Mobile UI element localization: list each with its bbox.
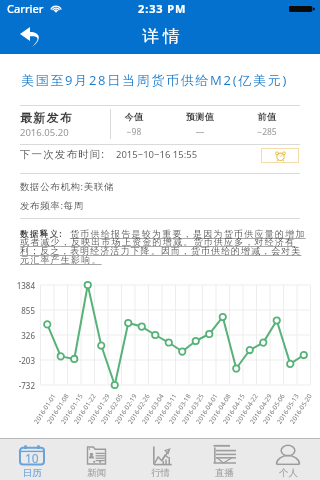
staticText: 元汇率产生影响。: [20, 254, 102, 265]
staticText: 2016-04-15: [221, 392, 247, 425]
staticText: 日历: [23, 467, 42, 479]
staticText: 今值: [94, 111, 174, 122]
staticText: 前值: [227, 111, 307, 122]
staticText: 数据释义:: [20, 228, 63, 240]
staticText: 2:33 PM: [138, 1, 187, 16]
staticText: 2016-03-11: [153, 392, 179, 425]
staticText: 2016.05.20: [20, 126, 69, 139]
staticText: 详情: [140, 26, 182, 47]
staticText: 1384: [0, 280, 35, 291]
staticText: -203: [0, 355, 35, 366]
staticText: 2016-04-29: [248, 392, 274, 425]
staticText: 2016-01-29: [86, 392, 112, 425]
staticText: −98: [94, 126, 174, 138]
staticText: 美国至9月28日当周货币供给M2(亿美元): [21, 71, 289, 89]
staticText: 2016-05-20: [288, 392, 314, 425]
staticText: 2016-05-06: [261, 392, 287, 425]
staticText: 2016-02-26: [126, 392, 152, 425]
staticText: 行情: [151, 467, 170, 479]
staticText: 直播: [215, 467, 234, 479]
staticText: -732: [0, 380, 35, 391]
staticText: 预测值: [160, 111, 240, 122]
staticText: 2016-02-19: [113, 392, 139, 425]
staticText: 2016-01-15: [59, 392, 85, 425]
staticText: 利；反之，表明经济活力下降。因而，货币供给的增减，会对美: [20, 245, 302, 256]
staticText: —: [160, 126, 240, 138]
button[interactable]: 新闻: [64, 439, 128, 480]
staticText: 855: [0, 305, 35, 316]
staticText: 2016-01-22: [72, 392, 98, 425]
staticText: 2016-05-13: [275, 392, 301, 425]
staticText: 10: [25, 450, 39, 466]
staticText: 2016-03-25: [180, 392, 206, 425]
button[interactable]: 直播: [192, 439, 256, 480]
staticText: 数据公布机构:美联储: [20, 180, 115, 193]
staticText: 326: [0, 330, 35, 341]
staticText: −285: [227, 126, 307, 138]
button[interactable]: Back: [17, 24, 45, 50]
staticText: 发布频率:每周: [20, 199, 84, 212]
button[interactable]: 个人: [256, 439, 320, 480]
staticText: 2016-04-01: [194, 392, 220, 425]
button[interactable]: 行情: [128, 439, 192, 480]
staticText: 2016-03-18: [167, 392, 193, 425]
staticText: 2016-04-08: [207, 392, 233, 425]
staticText: Carrier: [7, 1, 44, 16]
staticText: 2016-01-01: [32, 392, 58, 425]
staticText: 2016-01-08: [45, 392, 71, 425]
staticText: 货币供给报告是较为重要，是因为货币供应量的增加: [70, 228, 306, 239]
staticText: 或者减少，反映出市场上资金的增减。货币供应多，对经济有: [20, 236, 296, 247]
staticText: 个人: [279, 467, 298, 479]
staticText: 下一次发布时间:: [20, 147, 106, 161]
staticText: 2016-03-04: [140, 392, 166, 425]
staticText: 2015−10−16 15:55: [116, 148, 198, 161]
staticText: 新闻: [87, 467, 106, 479]
button[interactable]: Set reminder: [261, 148, 299, 163]
staticText: 最新发布: [20, 110, 74, 125]
button[interactable]: 10: [0, 439, 64, 480]
staticText: 2016-02-05: [99, 392, 125, 425]
staticText: 2016-04-22: [234, 392, 260, 425]
